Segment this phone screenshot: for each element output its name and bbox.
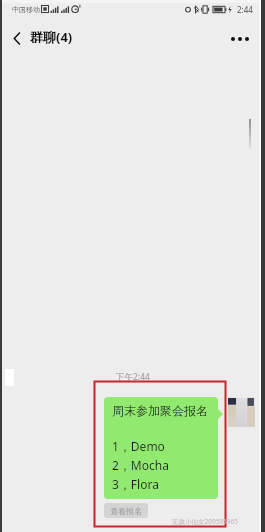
staticText: 无敌小仙女209595965 (172, 517, 238, 526)
button[interactable]: 查看报名 (104, 503, 148, 518)
staticText: 2，Mocha (112, 457, 169, 473)
staticText: 2:44 (237, 4, 253, 15)
staticText: 查看报名 (110, 506, 142, 516)
staticText: 下午2:44 (116, 371, 150, 383)
staticText: 群聊(4) (30, 28, 73, 46)
button[interactable]: Avatar (228, 396, 255, 427)
staticText: 1，Demo (112, 438, 165, 454)
staticText: 中国移动 (12, 5, 40, 14)
button[interactable]: More options (223, 18, 257, 52)
button[interactable]: Back (4, 18, 30, 52)
staticText: 周末参加聚会报名 (112, 403, 208, 418)
button[interactable]: 周末参加聚会报名 (104, 397, 218, 499)
staticText: 3，Flora (112, 476, 159, 492)
